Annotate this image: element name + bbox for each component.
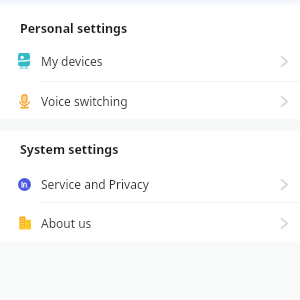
button[interactable]: My devices xyxy=(0,41,300,81)
button[interactable]: About us xyxy=(0,203,300,243)
staticText: Personal settings xyxy=(20,20,128,37)
staticText: Service and Privacy xyxy=(41,176,149,192)
button[interactable]: Voice switching xyxy=(0,81,300,121)
staticText: Voice switching xyxy=(41,93,128,109)
button[interactable]: Service and Privacy xyxy=(0,164,300,204)
staticText: About us xyxy=(41,215,92,231)
staticText: My devices xyxy=(41,53,103,69)
staticText: System settings xyxy=(20,141,119,158)
